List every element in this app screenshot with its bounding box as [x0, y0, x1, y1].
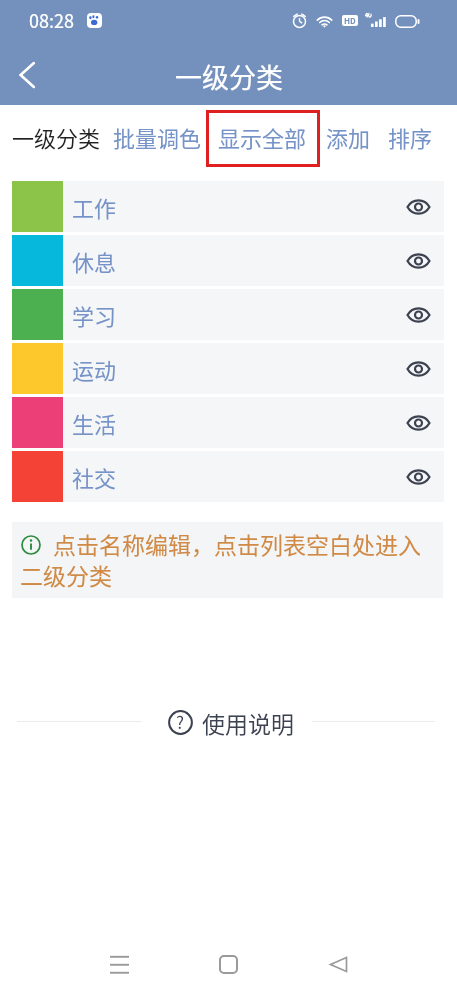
button[interactable]: Recent apps: [79, 922, 159, 989]
staticText: 一级分类: [175, 57, 283, 96]
staticText: 生活: [72, 407, 117, 439]
button[interactable]: 运动: [0, 343, 457, 397]
staticText: 工作: [72, 191, 117, 223]
button[interactable]: Toggle visibility: [394, 237, 442, 285]
staticText: 08:28: [29, 7, 74, 33]
staticText: 社交: [72, 461, 117, 493]
button[interactable]: 批量调色: [113, 121, 202, 153]
button[interactable]: 休息: [0, 235, 457, 289]
staticText: 运动: [72, 353, 117, 385]
button[interactable]: 工作: [0, 181, 457, 235]
button[interactable]: Toggle visibility: [394, 291, 442, 339]
button[interactable]: 社交: [0, 451, 457, 505]
button[interactable]: 学习: [0, 289, 457, 343]
button[interactable]: Back: [298, 924, 378, 989]
staticText: 使用说明: [202, 706, 294, 736]
button[interactable]: Toggle visibility: [394, 399, 442, 447]
staticText: 休息: [72, 245, 117, 277]
staticText: 二级分类: [20, 558, 112, 591]
button[interactable]: 显示全部: [218, 121, 307, 153]
staticText: ?: [176, 709, 185, 734]
button[interactable]: Toggle visibility: [394, 345, 442, 393]
button[interactable]: Home: [188, 924, 268, 989]
staticText: HD: [344, 15, 356, 26]
button[interactable]: 生活: [0, 397, 457, 451]
button[interactable]: [206, 110, 320, 167]
button[interactable]: 排序: [388, 121, 433, 153]
button[interactable]: ?: [166, 709, 296, 739]
staticText: 学习: [72, 299, 117, 331]
button[interactable]: Toggle visibility: [394, 453, 442, 501]
button[interactable]: 添加: [326, 121, 371, 153]
staticText: 点击名称编辑，点击列表空白处进入: [53, 527, 421, 560]
button[interactable]: Toggle visibility: [394, 183, 442, 231]
button[interactable]: Back: [3, 44, 51, 105]
button[interactable]: 一级分类: [12, 121, 101, 153]
